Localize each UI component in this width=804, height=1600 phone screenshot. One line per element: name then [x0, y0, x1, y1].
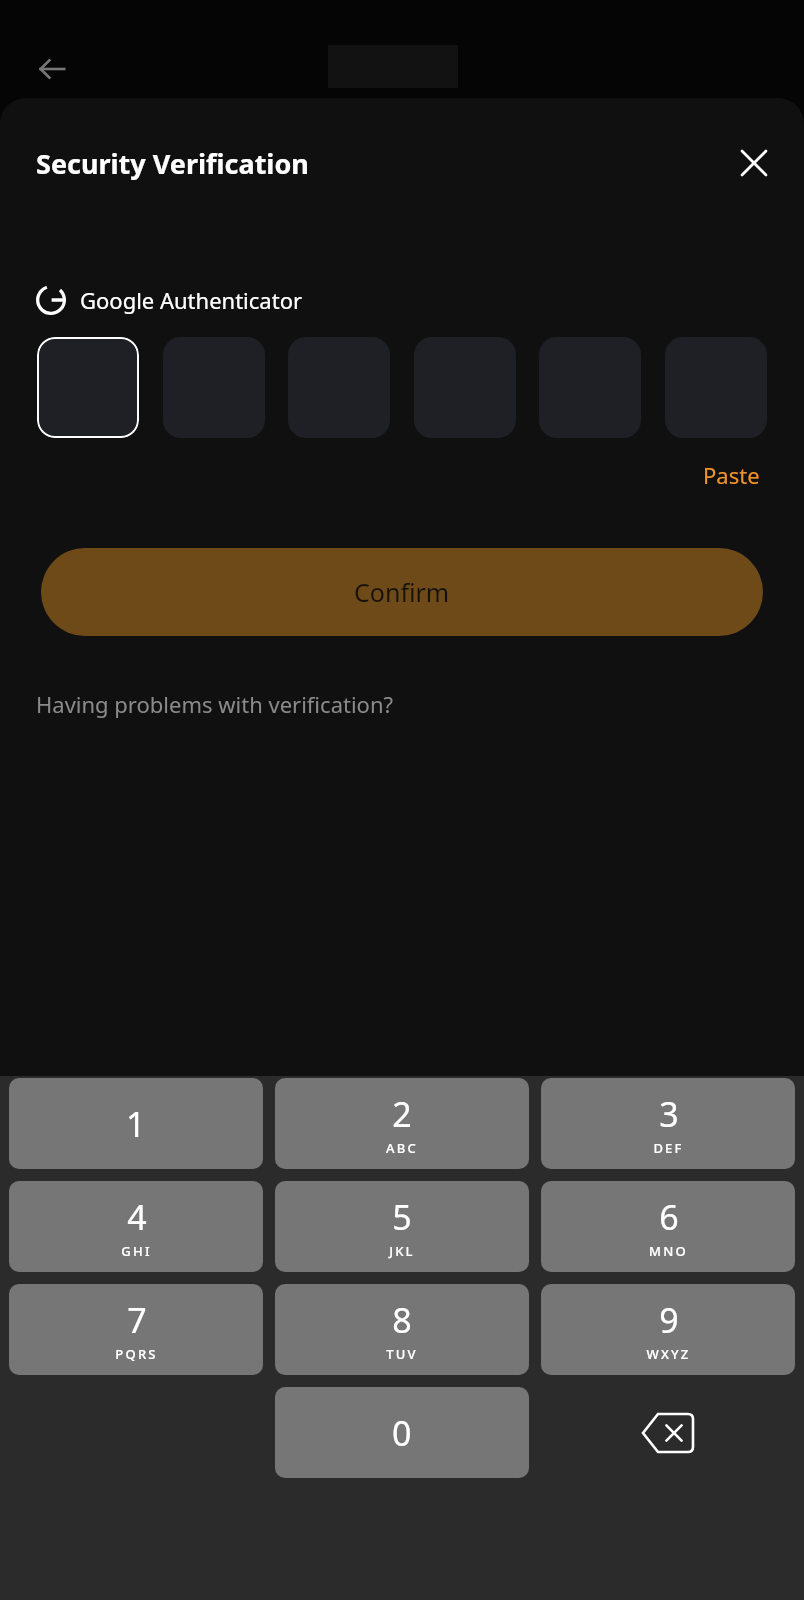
- staticText: Having problems with verification?: [36, 689, 394, 719]
- staticText: 3: [659, 1091, 679, 1137]
- staticText: PQRS: [115, 1345, 158, 1363]
- staticText: Confirm: [354, 575, 450, 609]
- button[interactable]: 4: [9, 1181, 263, 1272]
- button[interactable]: Confirm: [41, 548, 763, 636]
- staticText: 4: [127, 1194, 147, 1240]
- button[interactable]: 7: [9, 1284, 263, 1375]
- staticText: 8: [392, 1297, 412, 1343]
- button[interactable]: Backspace: [541, 1387, 795, 1478]
- staticText: DEF: [653, 1139, 684, 1157]
- staticText: 5: [392, 1194, 412, 1240]
- staticText: 6: [659, 1194, 679, 1240]
- button[interactable]: 8: [275, 1284, 529, 1375]
- staticText: 0: [392, 1410, 412, 1456]
- staticText: GHI: [121, 1242, 152, 1260]
- staticText: JKL: [389, 1242, 415, 1260]
- staticText: MNO: [649, 1242, 688, 1260]
- staticText: 2: [392, 1091, 412, 1137]
- staticText: WXYZ: [646, 1345, 691, 1363]
- button[interactable]: [163, 337, 265, 438]
- button[interactable]: 6: [541, 1181, 795, 1272]
- button[interactable]: 0: [275, 1387, 529, 1478]
- button[interactable]: 2: [275, 1078, 529, 1169]
- button[interactable]: Back: [28, 45, 76, 93]
- button[interactable]: [539, 337, 641, 438]
- button[interactable]: 5: [275, 1181, 529, 1272]
- staticText: Security Verification: [36, 145, 309, 182]
- button[interactable]: [37, 337, 139, 438]
- button[interactable]: 9: [541, 1284, 795, 1375]
- button[interactable]: [665, 337, 767, 438]
- staticText: 9: [659, 1297, 679, 1343]
- button[interactable]: Paste: [697, 454, 766, 496]
- button[interactable]: Having problems with verification?: [36, 689, 394, 719]
- staticText: Google Authenticator: [80, 285, 303, 315]
- staticText: 1: [126, 1101, 146, 1147]
- button[interactable]: Close: [728, 137, 780, 189]
- button[interactable]: 1: [9, 1078, 263, 1169]
- button[interactable]: [414, 337, 516, 438]
- staticText: 7: [127, 1297, 147, 1343]
- staticText: TUV: [386, 1345, 418, 1363]
- button[interactable]: 3: [541, 1078, 795, 1169]
- staticText: Paste: [703, 460, 760, 490]
- button[interactable]: [288, 337, 390, 438]
- staticText: ABC: [386, 1139, 418, 1157]
